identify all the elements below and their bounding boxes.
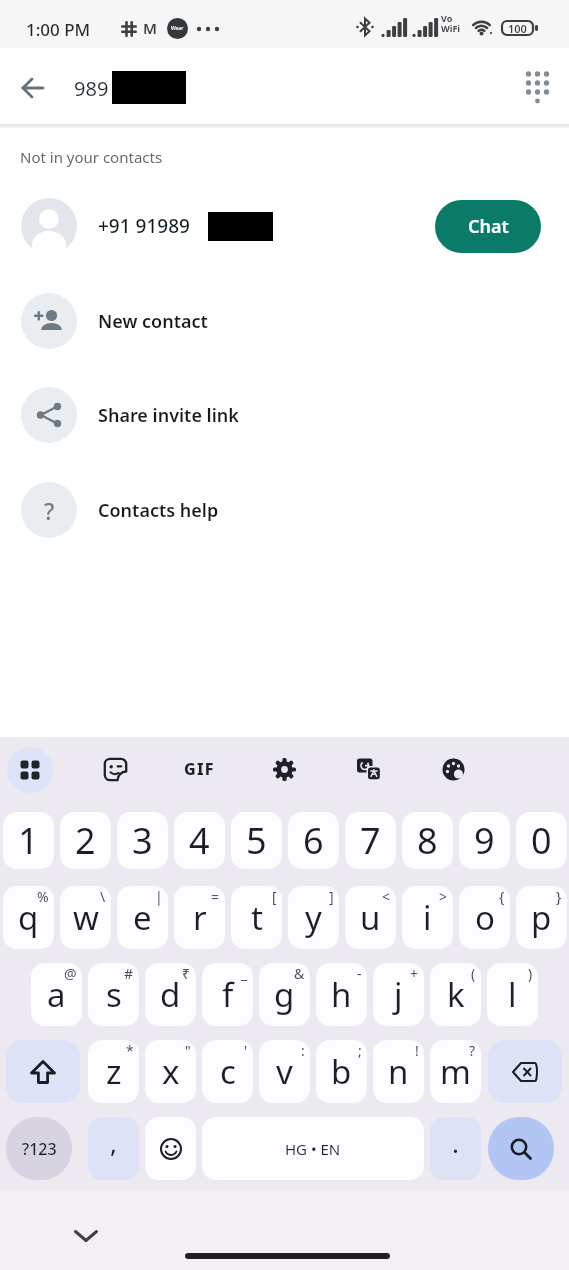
staticText: Contacts help xyxy=(98,498,219,523)
staticText: k xyxy=(447,972,465,1017)
button[interactable] xyxy=(488,1040,562,1103)
button[interactable]: ?123 xyxy=(6,1117,72,1180)
staticText: M xyxy=(143,18,157,38)
staticText: ] xyxy=(329,887,334,906)
button[interactable]: +91 91989 xyxy=(0,190,569,262)
button[interactable] xyxy=(346,747,390,791)
button[interactable]: c xyxy=(202,1040,253,1103)
button[interactable]: 0 xyxy=(516,812,567,869)
button[interactable]: n xyxy=(373,1040,424,1103)
staticText: . xyxy=(452,1125,459,1160)
button[interactable]: z xyxy=(88,1040,139,1103)
staticText: % xyxy=(37,887,49,906)
button[interactable]: , xyxy=(88,1117,139,1180)
staticText: ? xyxy=(44,495,55,526)
staticText: c xyxy=(220,1049,236,1094)
button[interactable]: p xyxy=(516,886,567,949)
button[interactable]: 7 xyxy=(345,812,396,869)
button[interactable]: o xyxy=(459,886,510,949)
button[interactable]: m xyxy=(430,1040,481,1103)
staticText: b xyxy=(331,1049,352,1094)
button[interactable]: l xyxy=(487,963,538,1026)
staticText: 0 xyxy=(531,816,552,865)
button[interactable]: ? xyxy=(0,474,569,546)
button[interactable]: GIF xyxy=(177,747,221,791)
staticText: " xyxy=(185,1041,191,1060)
button[interactable]: h xyxy=(316,963,367,1026)
button[interactable] xyxy=(431,747,475,791)
button[interactable]: s xyxy=(88,963,139,1026)
button[interactable]: v xyxy=(259,1040,310,1103)
button[interactable]: k xyxy=(430,963,481,1026)
staticText: ) xyxy=(528,964,533,983)
button[interactable]: 5 xyxy=(231,812,282,869)
staticText: + xyxy=(410,964,419,983)
staticText: 2 xyxy=(75,816,96,865)
button[interactable]: 8 xyxy=(402,812,453,869)
staticText: 3 xyxy=(132,816,153,865)
staticText: HG • EN xyxy=(285,1139,341,1159)
button[interactable]: w xyxy=(60,886,111,949)
staticText: > xyxy=(439,887,448,906)
staticText: m xyxy=(440,1049,471,1094)
button[interactable]: New contact xyxy=(0,285,569,357)
button[interactable]: HG • EN xyxy=(202,1117,424,1180)
button[interactable]: 4 xyxy=(174,812,225,869)
button[interactable]: j xyxy=(373,963,424,1026)
staticText: Share invite link xyxy=(98,403,239,428)
button[interactable]: Share invite link xyxy=(0,379,569,451)
button[interactable] xyxy=(488,1117,554,1180)
staticText: u xyxy=(360,895,381,940)
staticText: e xyxy=(133,895,152,940)
staticText: : xyxy=(301,1041,305,1060)
button[interactable] xyxy=(93,747,137,791)
button[interactable]: x xyxy=(145,1040,196,1103)
button[interactable]: r xyxy=(174,886,225,949)
staticText: ₹ xyxy=(182,964,191,983)
button[interactable] xyxy=(64,1220,108,1250)
staticText: 8 xyxy=(417,816,438,865)
staticText: g xyxy=(274,972,295,1017)
button[interactable] xyxy=(145,1117,196,1180)
staticText: 100 xyxy=(508,21,527,36)
staticText: l xyxy=(508,972,517,1017)
button[interactable]: 3 xyxy=(117,812,168,869)
button[interactable]: f xyxy=(202,963,253,1026)
staticText: w xyxy=(73,895,99,940)
button[interactable] xyxy=(6,1040,80,1103)
staticText: } xyxy=(556,887,562,906)
button[interactable]: . xyxy=(430,1117,481,1180)
staticText: ? xyxy=(469,1041,476,1060)
button[interactable]: d xyxy=(145,963,196,1026)
staticText: # xyxy=(124,964,134,983)
button[interactable]: b xyxy=(316,1040,367,1103)
button[interactable] xyxy=(7,747,53,793)
staticText: , xyxy=(110,1125,117,1160)
button[interactable] xyxy=(10,71,58,105)
button[interactable]: 1 xyxy=(3,812,54,869)
staticText: @ xyxy=(64,964,77,983)
button[interactable]: e xyxy=(117,886,168,949)
button[interactable]: t xyxy=(231,886,282,949)
button[interactable]: u xyxy=(345,886,396,949)
button[interactable]: a xyxy=(31,963,82,1026)
staticText: { xyxy=(499,887,505,906)
button[interactable]: q xyxy=(3,886,54,949)
button[interactable]: 2 xyxy=(60,812,111,869)
staticText: ( xyxy=(471,964,476,983)
button[interactable]: i xyxy=(402,886,453,949)
button[interactable] xyxy=(513,63,561,111)
staticText: h xyxy=(331,972,352,1017)
staticText: j xyxy=(394,972,403,1017)
staticText: o xyxy=(475,895,495,940)
staticText: Not in your contacts xyxy=(20,147,163,167)
staticText: GIF xyxy=(184,758,215,780)
button[interactable]: Chat xyxy=(435,200,541,253)
staticText: & xyxy=(294,964,305,983)
staticText: 1 xyxy=(18,816,39,865)
button[interactable] xyxy=(262,747,306,791)
button[interactable]: 6 xyxy=(288,812,339,869)
button[interactable]: y xyxy=(288,886,339,949)
button[interactable]: 9 xyxy=(459,812,510,869)
button[interactable]: g xyxy=(259,963,310,1026)
